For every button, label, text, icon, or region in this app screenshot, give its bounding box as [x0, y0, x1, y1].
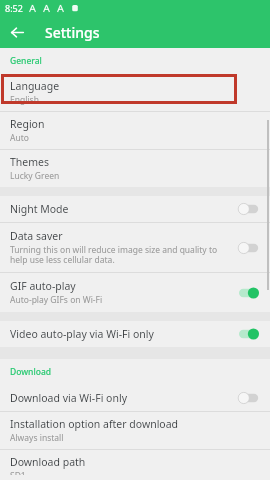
staticText: General [10, 55, 42, 67]
button[interactable]: GIF auto-play [0, 273, 270, 312]
staticText: Video auto-play via Wi-Fi only [10, 327, 154, 341]
button[interactable]: Region [0, 112, 270, 149]
button[interactable]: Installation option after download [0, 412, 270, 449]
button[interactable]: Themes [0, 150, 270, 187]
staticText: Language [10, 79, 60, 93]
button[interactable]: Download via Wi-Fi only [0, 385, 270, 411]
staticText: Auto [10, 132, 29, 144]
staticText: 8:52 [5, 2, 23, 14]
staticText: Download path [10, 455, 86, 469]
button[interactable]: Language [0, 74, 270, 111]
staticText: English [10, 94, 39, 106]
staticText: Auto-play GIFs on Wi-Fi [10, 294, 103, 306]
button[interactable]: Back [6, 21, 28, 43]
button[interactable]: Video auto-play via Wi-Fi only [0, 321, 270, 347]
staticText: Night Mode [10, 202, 69, 216]
staticText: GIF auto-play [10, 279, 76, 293]
staticText: Download via Wi-Fi only [10, 391, 128, 405]
staticText: Region [10, 117, 45, 131]
staticText: Settings [45, 23, 100, 42]
button[interactable]: Download path [0, 450, 270, 480]
button[interactable]: Night Mode [0, 196, 270, 222]
staticText: SD1 [10, 470, 26, 475]
staticText: Installation option after download [10, 417, 179, 431]
staticText: Always install [10, 432, 64, 444]
staticText: Themes [10, 155, 50, 169]
staticText: Turning this on will reduce image size a… [10, 244, 232, 266]
staticText: Lucky Green [10, 170, 60, 182]
button[interactable]: Data saver [0, 223, 270, 272]
staticText: Download [10, 366, 52, 378]
staticText: Data saver [10, 229, 63, 243]
